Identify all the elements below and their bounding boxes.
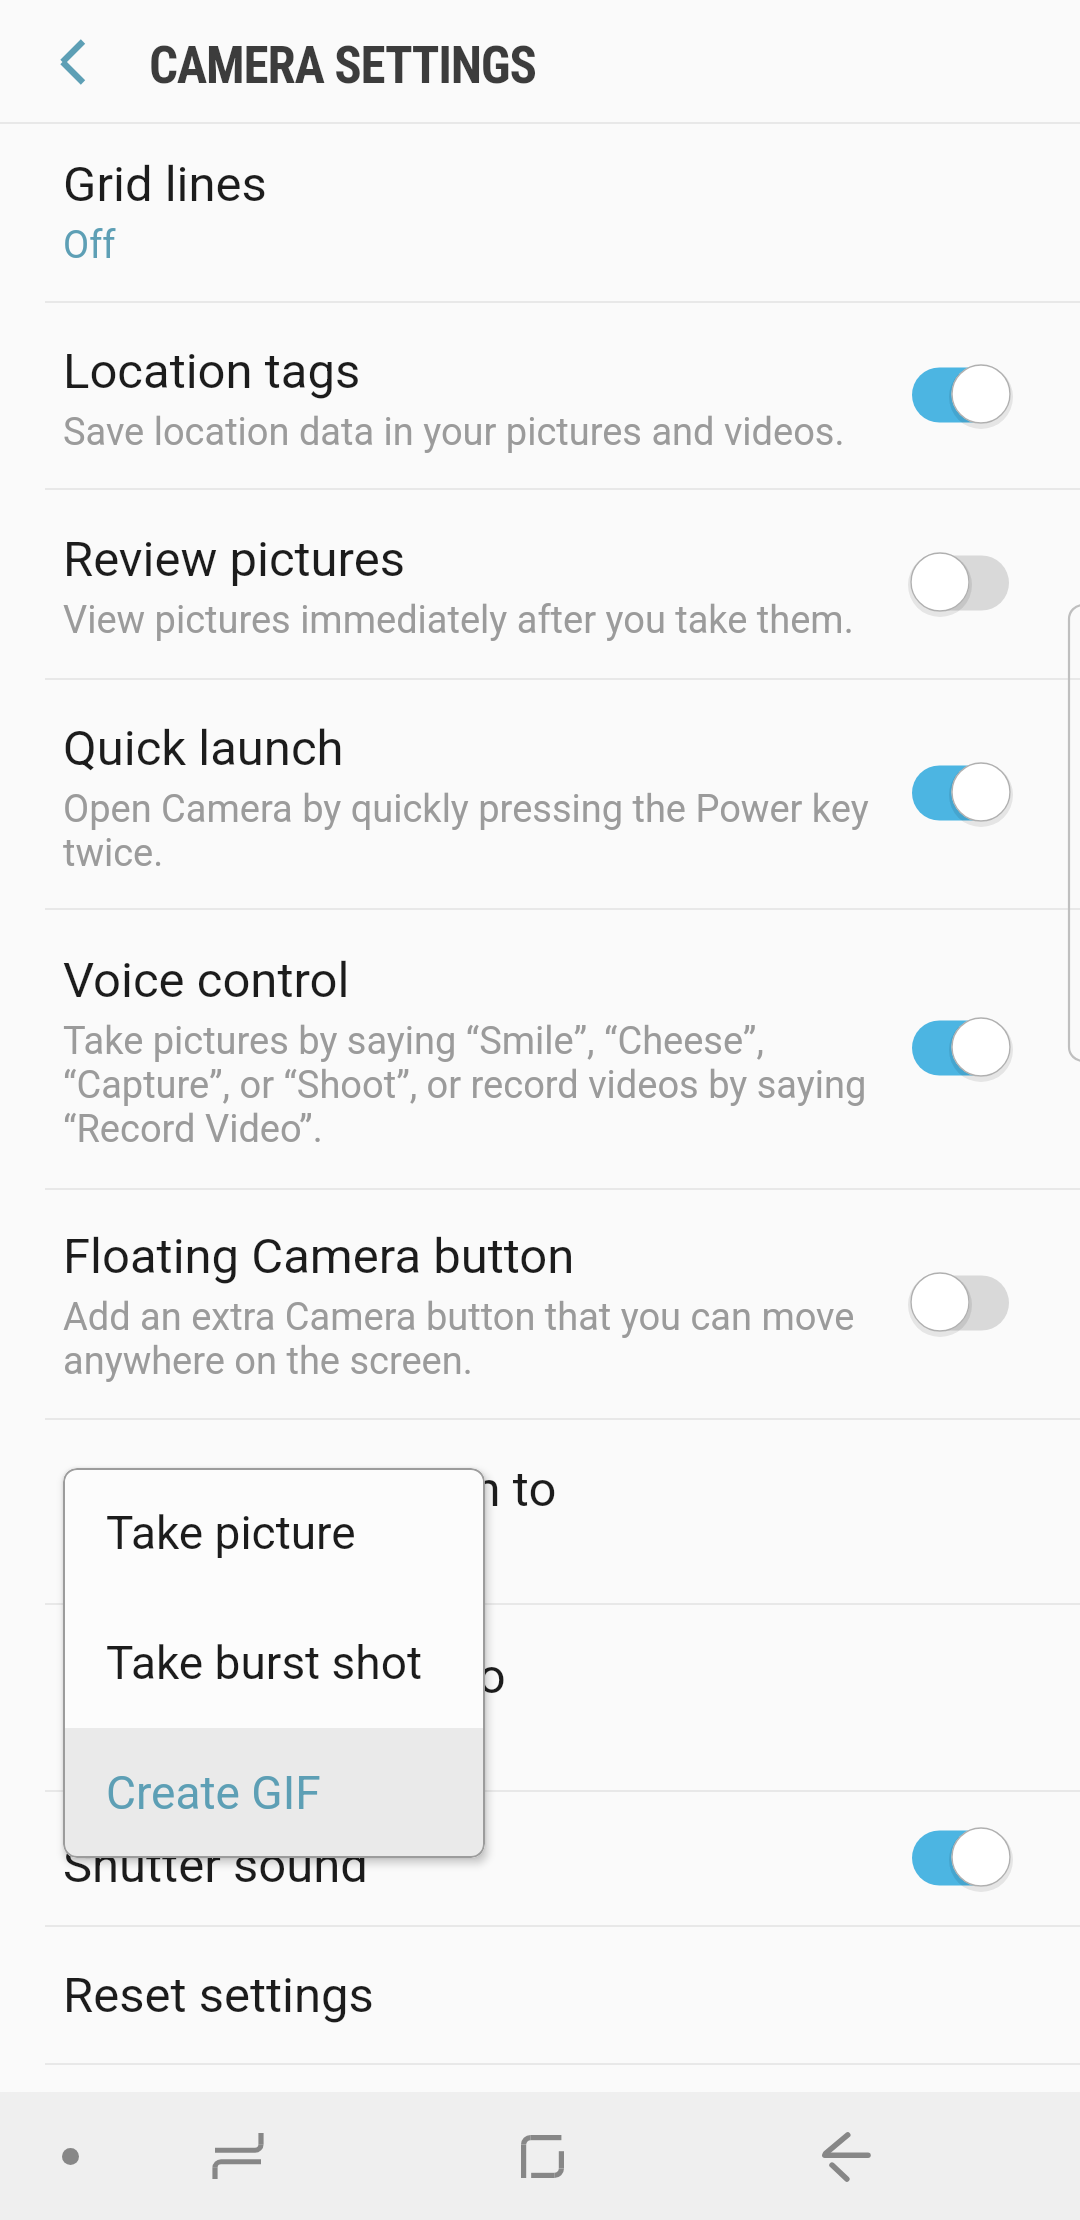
button[interactable]: Home [472, 2092, 612, 2220]
button[interactable]: Shutter sound [0, 1792, 1080, 1925]
button[interactable]: Take burst shot [63, 1598, 485, 1728]
staticText: Grid lines [63, 156, 267, 213]
staticText: View pictures immediately after you take… [63, 598, 854, 642]
button[interactable]: Floating Camera button [0, 1190, 1080, 1418]
button[interactable]: Hold Camera button to [0, 1420, 1080, 1603]
button[interactable]: Take picture [63, 1468, 485, 1598]
staticText: Create GIF [106, 1766, 321, 1820]
staticText: Save location data in your pictures and … [63, 410, 845, 454]
staticText: Take pictures [63, 1715, 289, 1759]
staticText: Off [63, 223, 116, 267]
staticText: Press Volume key to [63, 1648, 506, 1705]
staticText: Take picture [106, 1506, 356, 1560]
staticText: CAMERA SETTINGS [149, 36, 536, 96]
button[interactable]: Voice control [0, 910, 1080, 1188]
button[interactable]: More options [26, 2092, 114, 2220]
button[interactable]: Reset settings [0, 1927, 1080, 2063]
button[interactable]: Create GIF [63, 1728, 485, 1858]
staticText: Floating Camera button [63, 1228, 575, 1285]
staticText: Hold Camera button to [63, 1461, 557, 1518]
button[interactable]: Review pictures [0, 490, 1080, 678]
staticText: Quick launch [63, 720, 344, 777]
staticText: Take burst shot [106, 1636, 422, 1690]
staticText: Take picture [63, 1528, 270, 1572]
button[interactable]: Recent apps [168, 2092, 308, 2220]
button[interactable]: Quick launch [0, 680, 1080, 908]
staticText: Open Camera by quickly pressing the Powe… [63, 787, 910, 875]
button[interactable]: Location tags [0, 303, 1080, 488]
staticText: Add an extra Camera button that you can … [63, 1295, 910, 1383]
button[interactable]: Press Volume key to [0, 1605, 1080, 1790]
staticText: Shutter sound [63, 1837, 368, 1894]
staticText: Take pictures by saying “Smile”, “Cheese… [63, 1019, 910, 1151]
button[interactable]: Grid lines [0, 124, 1080, 301]
staticText: Location tags [63, 343, 361, 400]
staticText: Reset settings [63, 1967, 374, 2024]
staticText: Voice control [63, 952, 350, 1009]
button[interactable]: Back [775, 2092, 915, 2220]
staticText: Review pictures [63, 531, 406, 588]
button[interactable]: Navigate up [28, 16, 120, 108]
